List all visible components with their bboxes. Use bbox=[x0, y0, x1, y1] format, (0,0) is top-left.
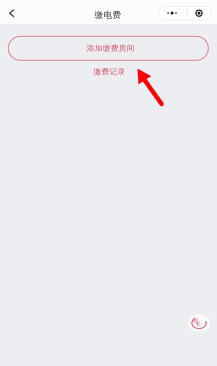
button[interactable]: Mini program menu bbox=[159, 6, 212, 20]
button[interactable]: Back bbox=[2, 1, 22, 25]
staticText: 长 bbox=[195, 321, 201, 328]
staticText: 缴费记录 bbox=[94, 67, 126, 76]
button[interactable]: 缴费记录 bbox=[78, 65, 142, 79]
button[interactable]: 添加缴费房间 bbox=[8, 36, 208, 60]
staticText: 缴电费 bbox=[95, 9, 122, 20]
staticText: 站 bbox=[193, 317, 199, 324]
staticText: 添加缴费房间 bbox=[87, 43, 135, 53]
